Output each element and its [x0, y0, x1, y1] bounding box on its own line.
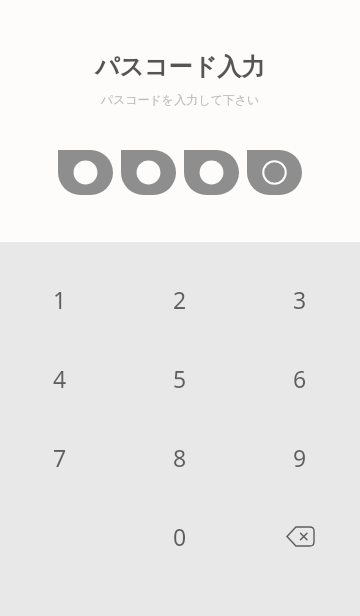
button[interactable]: 6 — [240, 339, 360, 418]
staticText: 1 — [53, 284, 67, 315]
button[interactable]: 0 — [120, 497, 240, 576]
staticText: 4 — [53, 363, 67, 394]
button[interactable]: 7 — [0, 418, 120, 497]
staticText: 9 — [293, 442, 307, 473]
button[interactable]: 8 — [120, 418, 240, 497]
staticText: 6 — [293, 363, 307, 394]
staticText: 3 — [293, 284, 307, 315]
staticText: 8 — [173, 442, 187, 473]
button[interactable]: 4 — [0, 339, 120, 418]
staticText: 0 — [173, 521, 187, 552]
staticText: パスコードを入力して下さい — [0, 92, 360, 107]
staticText: 2 — [173, 284, 187, 315]
staticText: 7 — [53, 442, 67, 473]
staticText: パスコード入力 — [0, 52, 360, 82]
button[interactable]: 3 — [240, 260, 360, 339]
button[interactable]: Delete — [240, 497, 360, 576]
button[interactable]: 9 — [240, 418, 360, 497]
staticText: 5 — [173, 363, 187, 394]
button[interactable]: 5 — [120, 339, 240, 418]
button[interactable]: 1 — [0, 260, 120, 339]
button[interactable]: 2 — [120, 260, 240, 339]
